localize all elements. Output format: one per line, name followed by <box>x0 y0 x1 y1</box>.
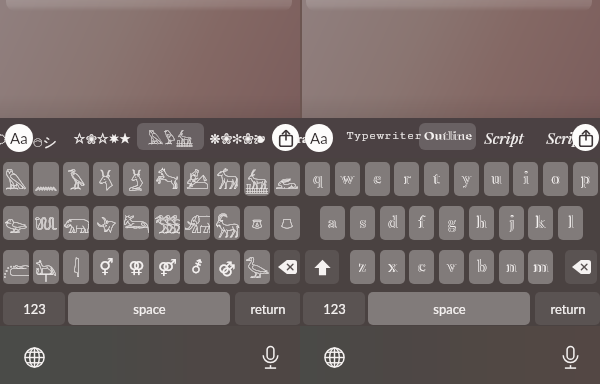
button[interactable]: j <box>499 206 524 240</box>
staticText: 𓃺 <box>275 163 299 195</box>
button[interactable]: Share <box>572 124 599 151</box>
button[interactable]: 𓃘 <box>214 162 240 196</box>
button[interactable]: 𓇸シ <box>33 128 57 151</box>
button[interactable]: s <box>350 206 375 240</box>
button[interactable]: 𓄄 <box>123 162 149 196</box>
button[interactable]: b <box>469 250 494 284</box>
button[interactable]: h <box>469 206 494 240</box>
button[interactable]: 𓅓 <box>3 162 29 196</box>
button[interactable]: 𓅰 <box>3 206 29 240</box>
button[interactable]: Aa <box>5 124 33 152</box>
button[interactable]: q <box>305 162 330 196</box>
button[interactable]: Share <box>272 124 299 151</box>
button[interactable]: 𓃵 <box>214 206 240 240</box>
staticText: 𓃵 <box>215 207 240 239</box>
staticText: 𓅓 <box>5 163 27 195</box>
staticText: 𓃰 <box>184 207 210 239</box>
button[interactable]: Dictation <box>258 345 283 370</box>
button[interactable]: 123 <box>303 292 365 325</box>
button[interactable]: Delete <box>565 250 597 284</box>
button[interactable]: ra <box>296 129 309 149</box>
button[interactable]: 𓄀 <box>93 206 119 240</box>
button[interactable]: l <box>558 206 583 240</box>
button[interactable]: return <box>235 292 301 325</box>
button[interactable]: p <box>573 162 598 196</box>
button[interactable]: space <box>68 292 230 325</box>
button[interactable]: 𓅭 <box>244 250 270 284</box>
button[interactable]: v <box>439 250 464 284</box>
button[interactable]: t <box>424 162 449 196</box>
button[interactable]: ◌◌ <box>0 130 18 152</box>
staticText: ❋❀✻❀❧ <box>209 129 266 151</box>
staticText: w <box>341 166 354 192</box>
button[interactable]: Dictation <box>558 345 583 370</box>
button[interactable]: ⚦ <box>184 250 210 284</box>
button[interactable]: e <box>365 162 390 196</box>
button[interactable]: Script <box>546 128 586 148</box>
button[interactable]: Switch keyboard <box>322 345 346 369</box>
button[interactable]: f <box>409 206 434 240</box>
staticText: o <box>551 166 561 192</box>
button[interactable]: u <box>484 162 509 196</box>
button[interactable]: a <box>320 206 345 240</box>
staticText: 𓇋 <box>73 251 80 283</box>
staticText: p <box>581 166 591 192</box>
button[interactable]: k <box>528 206 553 240</box>
button[interactable]: ⚢ <box>123 250 149 284</box>
button[interactable]: 𓅥 <box>63 162 89 196</box>
button[interactable]: Shift <box>305 250 339 284</box>
button[interactable]: z <box>350 250 375 284</box>
button[interactable]: 𓆚 <box>33 206 59 240</box>
staticText: Script <box>546 128 586 148</box>
button[interactable]: 𓅓𓅱𓃳 <box>137 123 204 150</box>
button[interactable]: ⚤ <box>154 250 180 284</box>
staticText: Typewriter <box>346 129 422 143</box>
button[interactable]: g <box>439 206 464 240</box>
button[interactable]: 𓃰 <box>184 206 210 240</box>
button[interactable]: n <box>499 250 524 284</box>
button[interactable]: ❋❀✻❀❧ <box>209 129 266 151</box>
button[interactable]: i <box>513 162 538 196</box>
button[interactable]: Outline <box>419 123 476 150</box>
button[interactable]: return <box>535 292 600 325</box>
staticText: ⚦ <box>190 258 204 277</box>
staticText: 𓆚 <box>34 207 58 239</box>
button[interactable]: c <box>409 250 434 284</box>
button[interactable]: 𓅢 <box>154 206 180 240</box>
button[interactable]: w <box>335 162 360 196</box>
button[interactable]: 𓃺 <box>274 162 300 196</box>
button[interactable]: 𓃧 <box>33 250 59 284</box>
button[interactable]: 𓈖 <box>33 162 59 196</box>
staticText: space <box>433 301 466 317</box>
button[interactable]: Aa <box>305 124 333 152</box>
button[interactable]: ⚣ <box>214 250 240 284</box>
button[interactable]: 𓂨 <box>3 250 29 284</box>
button[interactable]: 123 <box>3 292 65 325</box>
button[interactable]: ⚥ <box>93 250 119 284</box>
button[interactable]: 𓃚 <box>154 162 180 196</box>
button[interactable]: 𓃕 <box>184 162 210 196</box>
button[interactable]: 𓇋 <box>63 250 89 284</box>
button[interactable]: r <box>394 162 419 196</box>
button[interactable]: space <box>368 292 530 325</box>
button[interactable]: ☆❀☆✸★ <box>73 130 131 150</box>
button[interactable]: 𓄃 <box>93 162 119 196</box>
button[interactable]: y <box>454 162 479 196</box>
button[interactable]: d <box>380 206 405 240</box>
button[interactable]: m <box>528 250 553 284</box>
button[interactable]: Switch keyboard <box>22 345 46 369</box>
button[interactable]: 𓃯 <box>63 206 89 240</box>
button[interactable]: o <box>543 162 568 196</box>
button[interactable]: 𓃳 <box>244 162 270 196</box>
staticText: 123 <box>23 301 46 317</box>
button[interactable]: 𓎼 <box>244 206 270 240</box>
button[interactable]: x <box>380 250 405 284</box>
button[interactable]: Script <box>484 128 524 148</box>
staticText: b <box>477 254 487 280</box>
staticText: j <box>509 210 515 236</box>
button[interactable]: 𓃛 <box>123 206 149 240</box>
staticText: ☆❀☆✸★ <box>73 130 131 150</box>
button[interactable]: Typewriter <box>346 129 422 143</box>
button[interactable]: 𓎾 <box>274 206 300 240</box>
button[interactable]: Delete <box>274 250 300 284</box>
